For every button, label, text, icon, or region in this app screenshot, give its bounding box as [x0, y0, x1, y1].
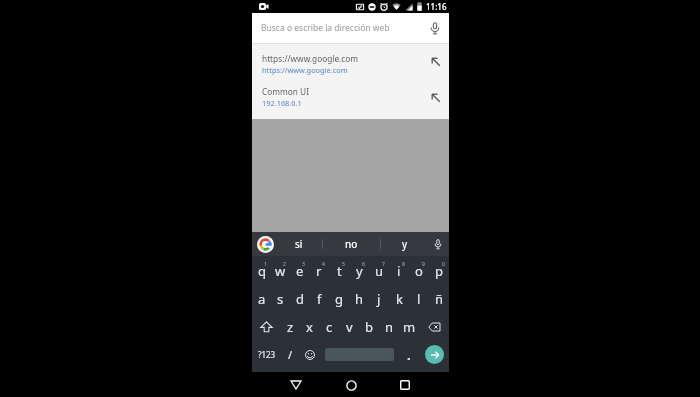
- staticText: h: [355, 290, 364, 308]
- staticText: k: [396, 290, 403, 308]
- staticText: 11:16: [426, 1, 447, 12]
- staticText: e: [296, 262, 304, 280]
- staticText: 9: [422, 261, 425, 268]
- button[interactable]: c: [319, 312, 339, 341]
- button[interactable]: k: [389, 286, 409, 312]
- button[interactable]: o: [409, 256, 429, 286]
- staticText: ?123: [258, 349, 276, 360]
- staticText: /: [288, 347, 293, 362]
- button[interactable]: u: [369, 256, 389, 286]
- staticText: 192.168.0.1: [262, 98, 302, 108]
- button[interactable]: j: [369, 286, 389, 312]
- button[interactable]: n: [379, 312, 399, 341]
- staticText: 3: [302, 261, 305, 268]
- staticText: r: [316, 262, 322, 280]
- button[interactable]: https://www.google.com: [252, 44, 449, 80]
- button[interactable]: [419, 312, 449, 341]
- staticText: 7: [382, 261, 385, 268]
- staticText: c: [326, 318, 333, 336]
- staticText: si: [295, 237, 303, 251]
- button[interactable]: .: [399, 341, 419, 368]
- button[interactable]: z: [281, 312, 300, 341]
- button[interactable]: v: [339, 312, 359, 341]
- staticText: z: [287, 318, 294, 336]
- button[interactable]: Common UI: [252, 80, 449, 116]
- button[interactable]: e: [290, 256, 309, 286]
- staticText: n: [385, 318, 394, 336]
- staticText: u: [375, 262, 384, 280]
- button[interactable]: y: [381, 232, 428, 256]
- button[interactable]: l: [409, 286, 429, 312]
- staticText: v: [346, 318, 353, 336]
- staticText: i: [397, 262, 401, 280]
- staticText: https://www.google.com: [262, 65, 348, 75]
- staticText: s: [277, 290, 284, 308]
- button[interactable]: /: [281, 341, 300, 368]
- staticText: no: [345, 237, 358, 251]
- staticText: p: [435, 262, 443, 280]
- staticText: l: [417, 290, 421, 308]
- staticText: 4: [322, 261, 325, 268]
- staticText: d: [296, 290, 304, 308]
- staticText: Busca o escribe la dirección web: [261, 22, 390, 34]
- staticText: t: [337, 262, 342, 280]
- button[interactable]: x: [300, 312, 319, 341]
- button[interactable]: [257, 236, 274, 253]
- button[interactable]: f: [309, 286, 329, 312]
- button[interactable]: m: [399, 312, 419, 341]
- button[interactable]: [252, 312, 281, 341]
- button[interactable]: Busca o escribe la dirección web: [252, 13, 449, 43]
- button[interactable]: p: [429, 256, 449, 286]
- staticText: j: [377, 290, 381, 308]
- button[interactable]: ñ: [429, 286, 449, 312]
- staticText: 8: [402, 261, 405, 268]
- button[interactable]: y: [349, 256, 369, 286]
- staticText: Common UI: [262, 86, 309, 97]
- button[interactable]: q: [252, 256, 271, 286]
- staticText: 0: [442, 261, 445, 268]
- button[interactable]: [340, 374, 362, 396]
- staticText: a: [258, 290, 266, 308]
- button[interactable]: no: [323, 232, 380, 256]
- button[interactable]: b: [359, 312, 379, 341]
- button[interactable]: [434, 239, 442, 250]
- staticText: o: [415, 262, 423, 280]
- button[interactable]: h: [349, 286, 369, 312]
- staticText: q: [258, 262, 266, 280]
- staticText: 6: [362, 261, 365, 268]
- button[interactable]: a: [252, 286, 271, 312]
- button[interactable]: r: [309, 256, 329, 286]
- staticText: 2: [283, 261, 286, 268]
- button[interactable]: si: [275, 232, 322, 256]
- button[interactable]: [300, 341, 320, 368]
- staticText: y: [356, 262, 363, 280]
- button[interactable]: [419, 341, 449, 368]
- button[interactable]: [285, 374, 307, 396]
- staticText: .: [407, 346, 411, 364]
- staticText: 5: [342, 261, 345, 268]
- staticText: b: [365, 318, 373, 336]
- staticText: y: [402, 237, 408, 251]
- button[interactable]: w: [271, 256, 290, 286]
- button[interactable]: i: [389, 256, 409, 286]
- button[interactable]: s: [271, 286, 290, 312]
- staticText: 1: [264, 261, 267, 268]
- staticText: m: [403, 318, 416, 336]
- button[interactable]: [394, 374, 416, 396]
- button[interactable]: ?123: [252, 341, 281, 368]
- staticText: https://www.google.com: [262, 53, 359, 64]
- staticText: g: [335, 290, 343, 308]
- button[interactable]: d: [290, 286, 309, 312]
- staticText: w: [275, 262, 286, 280]
- staticText: f: [317, 290, 322, 308]
- staticText: x: [306, 318, 313, 336]
- staticText: ñ: [435, 290, 444, 308]
- button[interactable]: t: [329, 256, 349, 286]
- button[interactable]: g: [329, 286, 349, 312]
